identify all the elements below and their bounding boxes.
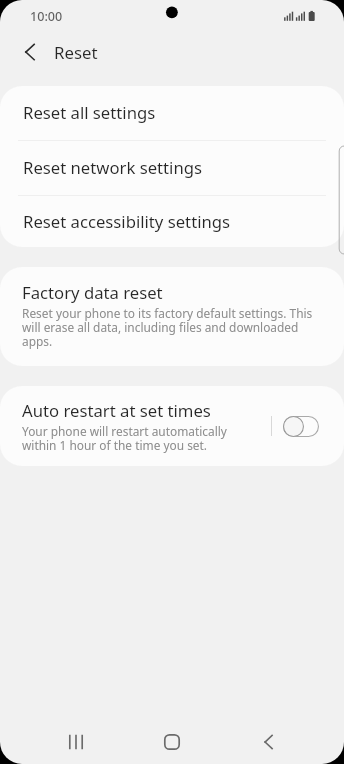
button[interactable]: Recent apps [52, 719, 100, 764]
staticText: Reset your phone to its factory default … [22, 307, 318, 349]
staticText: 10:00 [30, 8, 63, 25]
button[interactable]: Auto restart at set times [0, 386, 264, 466]
button[interactable]: Reset network settings [0, 141, 344, 195]
staticText: Your phone will restart automatically wi… [22, 425, 262, 453]
button[interactable]: Factory data reset [0, 267, 344, 366]
staticText: Reset all settings [23, 103, 156, 123]
staticText: Reset accessibility settings [23, 212, 231, 232]
button[interactable]: Back [244, 719, 292, 764]
staticText: Factory data reset [22, 283, 163, 303]
staticText: Auto restart at set times [22, 401, 211, 421]
button[interactable]: Auto restart at set times toggle, off [283, 416, 319, 437]
staticText: Reset network settings [23, 158, 202, 178]
staticText: Reset [54, 41, 98, 63]
button[interactable]: Reset accessibility settings [0, 196, 344, 247]
button[interactable]: Reset all settings [0, 86, 344, 140]
button[interactable]: Navigate up [14, 36, 46, 68]
button[interactable]: Home [148, 719, 196, 764]
